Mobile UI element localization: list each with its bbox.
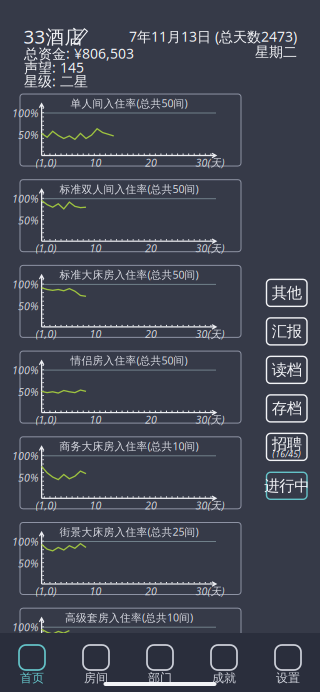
staticText: (1,0): [35, 498, 56, 512]
staticText: 20: [145, 155, 157, 170]
staticText: 10: [90, 327, 102, 341]
staticText: 10: [90, 669, 102, 684]
button[interactable]: 首页: [0, 633, 64, 692]
button[interactable]: Rename hotel: [72, 27, 90, 46]
staticText: (16/45): [272, 448, 301, 460]
button[interactable]: 进行中: [266, 472, 307, 499]
staticText: 30(天): [196, 412, 225, 427]
staticText: 房间: [84, 670, 108, 685]
staticText: 部门: [148, 670, 172, 685]
staticText: 50%: [18, 299, 39, 313]
staticText: 情侣房入住率(总共50间): [70, 353, 187, 367]
staticText: (1,0): [35, 155, 56, 170]
staticText: (1,0): [35, 327, 56, 341]
staticText: 设置: [276, 670, 300, 685]
staticText: 20: [145, 669, 157, 684]
staticText: 100%: [12, 620, 39, 634]
staticText: 首页: [20, 670, 44, 685]
staticText: 30(天): [196, 669, 225, 684]
button[interactable]: 读档: [266, 356, 307, 383]
staticText: 进行中: [264, 476, 309, 495]
staticText: 50%: [18, 556, 39, 570]
staticText: 星期二: [255, 43, 297, 61]
button[interactable]: 房间: [64, 633, 128, 692]
staticText: 100%: [12, 191, 39, 206]
staticText: 其他: [272, 283, 302, 302]
staticText: 声望: 145: [24, 58, 84, 77]
staticText: 30(天): [196, 498, 225, 512]
staticText: 招聘: [272, 434, 302, 453]
button[interactable]: 成就: [192, 633, 256, 692]
staticText: 100%: [12, 534, 39, 549]
staticText: 50%: [18, 470, 39, 485]
button[interactable]: 部门: [128, 633, 192, 692]
button[interactable]: 招聘: [266, 433, 307, 460]
staticText: 20: [145, 412, 157, 427]
staticText: 10: [90, 498, 102, 512]
staticText: 10: [90, 155, 102, 170]
staticText: 标准双人间入住率(总共50间): [59, 182, 198, 196]
staticText: 存档: [272, 399, 302, 418]
staticText: 50%: [18, 213, 39, 228]
staticText: 汇报: [272, 322, 302, 341]
staticText: 30(天): [196, 155, 225, 170]
staticText: 20: [145, 584, 157, 598]
button[interactable]: 设置: [256, 633, 320, 692]
staticText: 高级套房入住率(总共10间): [65, 610, 193, 625]
staticText: 33酒店: [23, 24, 83, 49]
staticText: 30(天): [196, 241, 225, 255]
button[interactable]: 汇报: [266, 318, 307, 345]
staticText: 50%: [18, 385, 39, 399]
staticText: 7年11月13日 (总天数2473): [129, 27, 297, 46]
staticText: 10: [90, 241, 102, 255]
staticText: 20: [145, 498, 157, 512]
staticText: (1,0): [35, 412, 56, 427]
staticText: 20: [145, 241, 157, 255]
staticText: 街景大床房入住率(总共25间): [59, 524, 198, 539]
staticText: 100%: [12, 277, 39, 292]
staticText: 商务大床房入住率(总共10间): [59, 439, 198, 453]
staticText: 100%: [12, 448, 39, 463]
staticText: 单人间入住率(总共50间): [70, 96, 187, 110]
staticText: 30(天): [196, 327, 225, 341]
staticText: 30(天): [196, 584, 225, 598]
staticText: 读档: [272, 360, 302, 379]
button[interactable]: 存档: [266, 395, 307, 422]
staticText: (1,0): [35, 241, 56, 255]
staticText: 成就: [212, 670, 236, 685]
staticText: 20: [145, 327, 157, 341]
staticText: 标准大床房入住率(总共50间): [59, 267, 198, 282]
staticText: (1,0): [35, 584, 56, 598]
staticText: (1,0): [35, 669, 56, 684]
staticText: 50%: [18, 642, 39, 656]
staticText: 100%: [12, 106, 39, 120]
button[interactable]: 其他: [266, 279, 307, 306]
staticText: 50%: [18, 127, 39, 142]
staticText: 星级: 二星: [24, 72, 88, 91]
staticText: 10: [90, 584, 102, 598]
staticText: 总资金: ¥806,503: [24, 44, 134, 63]
staticText: 100%: [12, 363, 39, 377]
staticText: 10: [90, 412, 102, 427]
